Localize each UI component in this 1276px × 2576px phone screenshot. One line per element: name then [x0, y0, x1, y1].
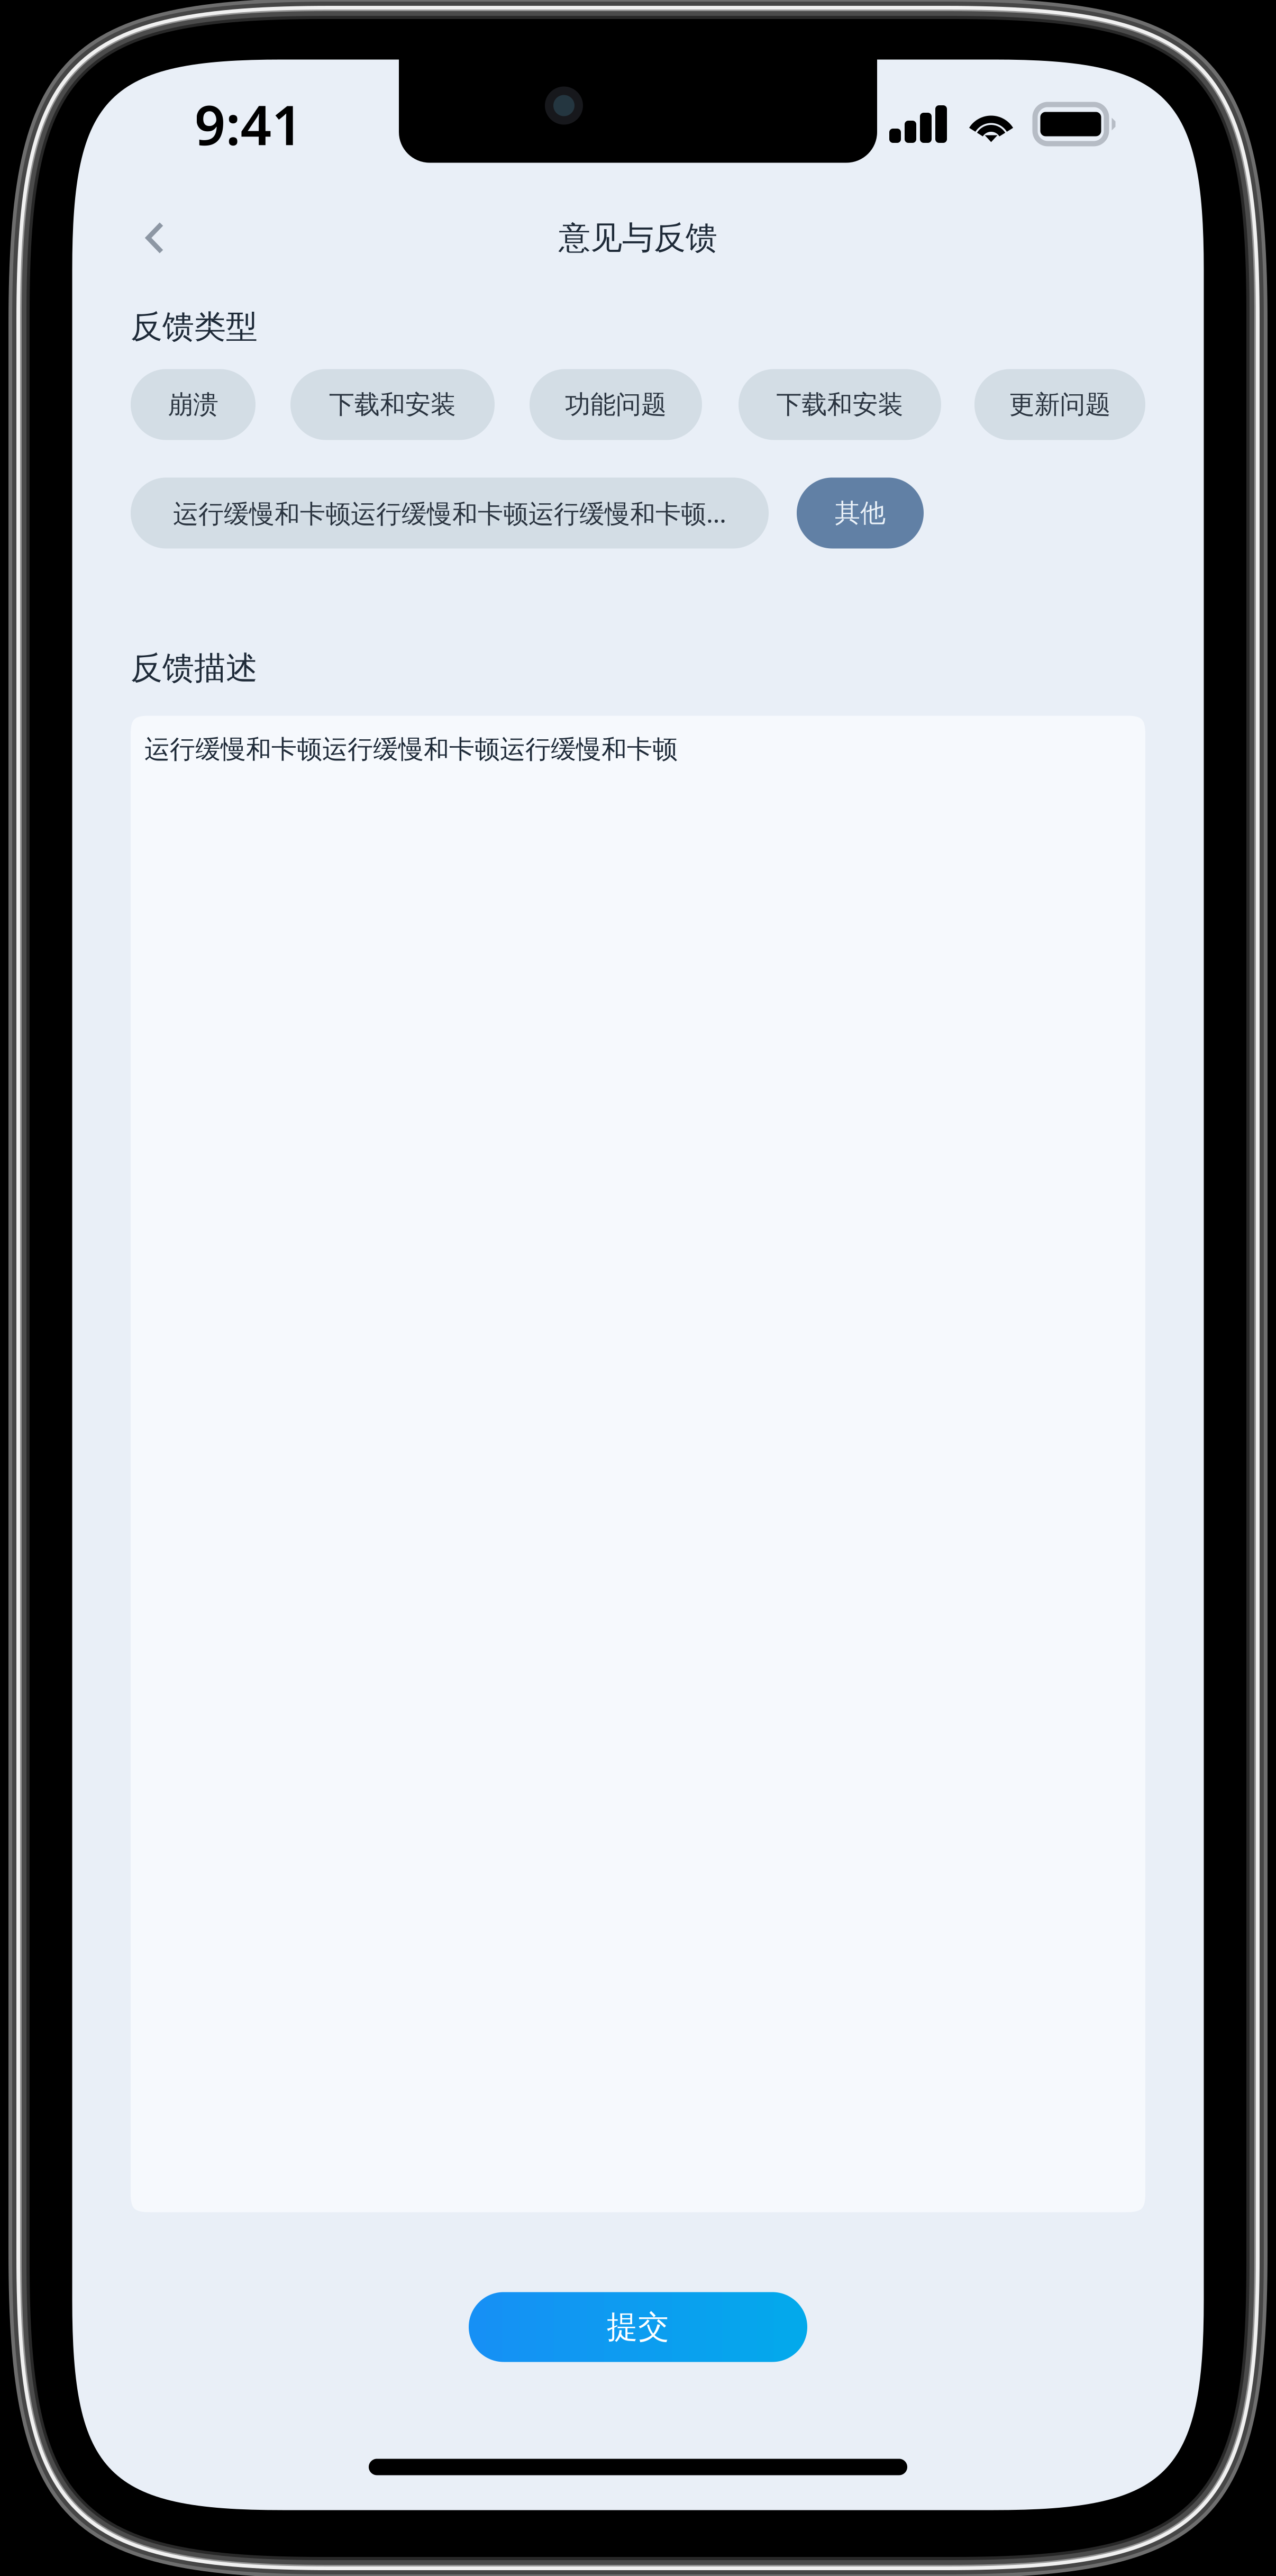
button[interactable]: 功能问题	[530, 369, 702, 440]
staticText: 提交	[607, 2308, 669, 2346]
button[interactable]: 更新问题	[974, 369, 1145, 440]
button[interactable]: 提交	[469, 2292, 807, 2362]
staticText: 运行缓慢和卡顿运行缓慢和卡顿运行缓慢和卡顿…	[173, 496, 726, 530]
staticText: 运行缓慢和卡顿运行缓慢和卡顿运行缓慢和卡顿	[144, 734, 678, 765]
staticText: 其他	[835, 497, 886, 529]
staticText: 意见与反馈	[559, 218, 717, 257]
button[interactable]: 下载和安装	[290, 369, 495, 440]
staticText: 功能问题	[565, 389, 667, 420]
button[interactable]: 崩溃	[131, 369, 256, 440]
button[interactable]: 返回	[118, 201, 192, 275]
staticText: 反馈描述	[131, 649, 258, 688]
button[interactable]: 下载和安装	[739, 369, 941, 440]
staticText: 反馈类型	[131, 307, 258, 346]
staticText: 9:41	[194, 88, 303, 160]
button[interactable]: 运行缓慢和卡顿运行缓慢和卡顿运行缓慢和卡顿…	[131, 478, 769, 548]
staticText: 更新问题	[1009, 389, 1111, 420]
staticText: 下载和安装	[329, 389, 456, 420]
staticText: 下载和安装	[776, 389, 903, 420]
button[interactable]: 其他	[797, 478, 924, 548]
staticText: 崩溃	[168, 389, 218, 420]
